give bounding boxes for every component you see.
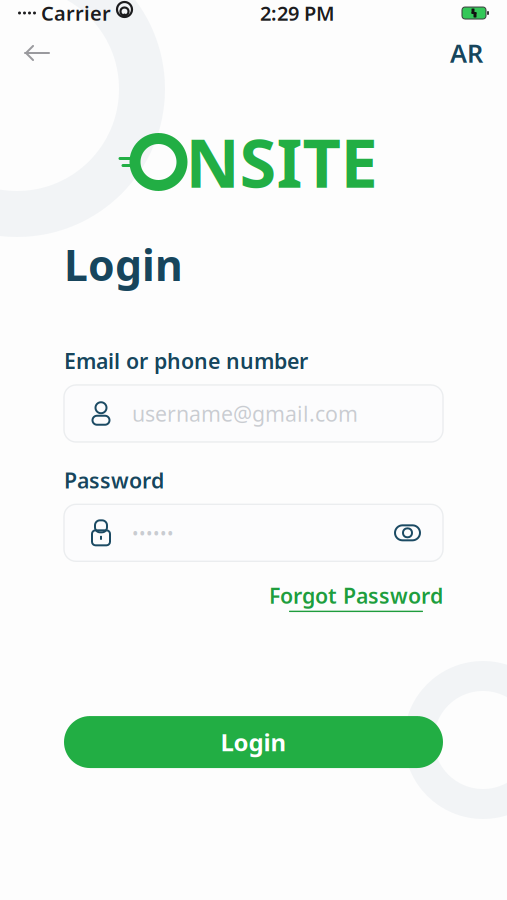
button[interactable]: Back bbox=[14, 30, 60, 76]
staticText: •••••• bbox=[132, 521, 174, 544]
staticText: Carrier bbox=[41, 0, 111, 26]
staticText: AR bbox=[450, 36, 483, 70]
button[interactable]: •••••• bbox=[64, 504, 443, 561]
staticText: username@gmail.com bbox=[132, 399, 358, 428]
staticText: Email or phone number bbox=[64, 347, 308, 375]
staticText: 2:29 PM bbox=[260, 0, 335, 26]
staticText: Password bbox=[64, 466, 164, 494]
staticText: Forgot Password bbox=[269, 581, 443, 610]
staticText: NSITE bbox=[185, 118, 377, 206]
button[interactable]: Login bbox=[64, 716, 443, 768]
button[interactable]: AR bbox=[440, 28, 493, 78]
button[interactable]: Forgot Password bbox=[269, 575, 443, 618]
button[interactable]: username@gmail.com bbox=[64, 385, 443, 442]
staticText: Login bbox=[220, 726, 286, 758]
staticText: Login bbox=[64, 236, 183, 293]
